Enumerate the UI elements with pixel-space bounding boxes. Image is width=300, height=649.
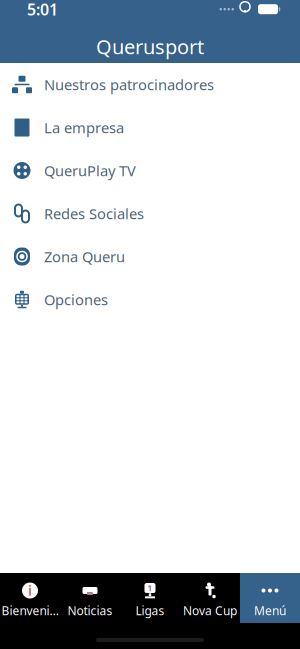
staticText: Noticias <box>67 602 112 618</box>
staticText: Nova Cup <box>183 602 237 618</box>
staticText: Redes Sociales <box>44 204 144 223</box>
staticText: Opciones <box>44 290 108 309</box>
staticText: Querusport <box>96 33 204 60</box>
button[interactable]: Nova Cup <box>180 573 240 623</box>
staticText: 1 <box>147 583 152 593</box>
staticText: Menú <box>254 602 286 618</box>
staticText: 5:01 <box>27 0 58 20</box>
button[interactable]: Menú <box>240 573 300 623</box>
button[interactable]: i <box>0 573 60 623</box>
staticText: Nuestros patrocinadores <box>44 75 214 94</box>
button[interactable]: Redes Sociales <box>0 192 300 235</box>
button[interactable]: Nuestros patrocinadores <box>0 63 300 106</box>
staticText: i <box>28 582 32 599</box>
button[interactable]: Zona Queru <box>0 235 300 278</box>
staticText: La empresa <box>44 118 124 137</box>
button[interactable]: Opciones <box>0 278 300 321</box>
staticText: QueruPlay TV <box>44 161 136 180</box>
button[interactable]: 1 <box>120 573 180 623</box>
button[interactable]: La empresa <box>0 106 300 149</box>
staticText: Zona Queru <box>44 247 125 266</box>
button[interactable]: Noticias <box>60 573 120 623</box>
staticText: Bienveni… <box>1 602 58 618</box>
button[interactable]: QueruPlay TV <box>0 149 300 192</box>
staticText: Ligas <box>135 602 164 618</box>
